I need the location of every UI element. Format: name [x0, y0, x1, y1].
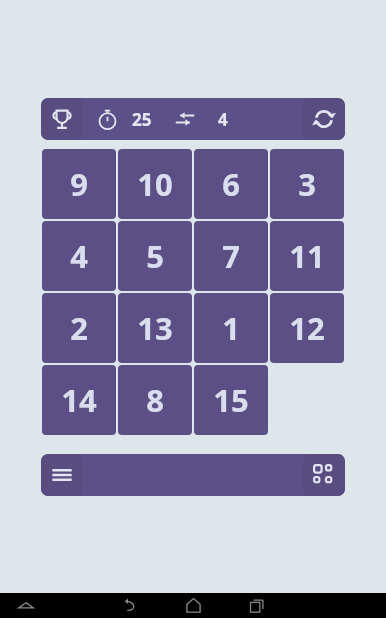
staticText: 4 [70, 235, 88, 277]
button[interactable]: Recent apps [237, 593, 277, 618]
button[interactable]: 13 [118, 293, 192, 363]
button[interactable]: 10 [118, 149, 192, 219]
staticText: 3 [298, 163, 316, 205]
button[interactable]: 8 [118, 365, 192, 435]
button[interactable]: 14 [42, 365, 116, 435]
button[interactable]: 9 [42, 149, 116, 219]
staticText: 13 [137, 307, 173, 349]
staticText: 1 [222, 307, 240, 349]
button[interactable]: 5 [118, 221, 192, 291]
button[interactable]: 1 [194, 293, 268, 363]
button[interactable]: Restart game [303, 98, 345, 140]
button[interactable]: 2 [42, 293, 116, 363]
button[interactable]: 15 [194, 365, 268, 435]
staticText: 11 [289, 235, 325, 277]
button[interactable]: Back [109, 593, 149, 618]
staticText: 10 [137, 163, 173, 205]
staticText: 8 [146, 379, 164, 421]
staticText: 9 [70, 163, 88, 205]
other: Hide navigation [8, 593, 44, 618]
staticText: 4 [218, 108, 228, 131]
button[interactable]: Menu [41, 454, 83, 496]
button[interactable]: Best scores [41, 98, 83, 140]
button[interactable]: 4 [42, 221, 116, 291]
button[interactable]: 11 [270, 221, 344, 291]
button[interactable]: 3 [270, 149, 344, 219]
staticText: 5 [146, 235, 164, 277]
button[interactable]: Home [173, 593, 213, 618]
button[interactable]: Board size [303, 454, 345, 496]
button[interactable]: 12 [270, 293, 344, 363]
staticText: 2 [70, 307, 88, 349]
button[interactable]: 6 [194, 149, 268, 219]
staticText: 7 [222, 235, 240, 277]
staticText: 6 [222, 163, 240, 205]
staticText: 15 [213, 379, 249, 421]
button[interactable]: 7 [194, 221, 268, 291]
staticText: 12 [289, 307, 325, 349]
staticText: 25 [132, 108, 152, 131]
staticText: 14 [61, 379, 97, 421]
